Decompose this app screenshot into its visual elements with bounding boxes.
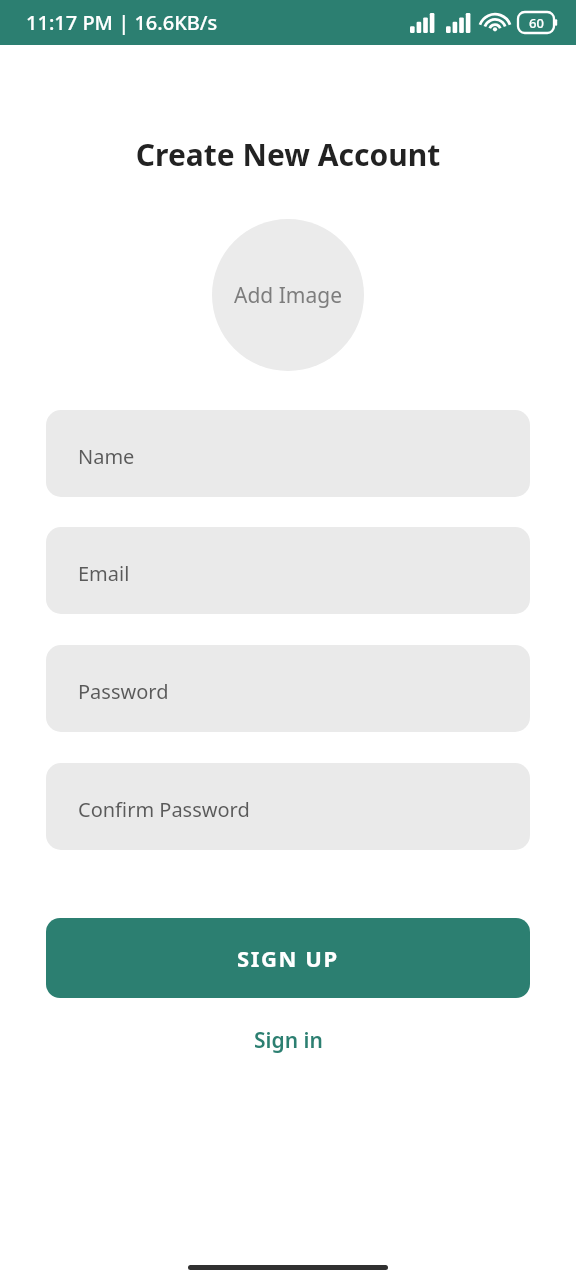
staticText: Email xyxy=(78,560,130,587)
staticText: Add Image xyxy=(234,281,343,310)
button[interactable]: Name xyxy=(46,410,530,497)
button[interactable]: Add Image xyxy=(212,219,364,371)
button[interactable]: SIGN UP xyxy=(46,918,530,998)
staticText: Sign in xyxy=(254,1026,323,1055)
button[interactable]: Email xyxy=(46,527,530,614)
button[interactable]: Sign in xyxy=(242,1020,335,1061)
button[interactable]: Confirm Password xyxy=(46,763,530,850)
staticText: SIGN UP xyxy=(237,943,339,973)
staticText: 60 xyxy=(529,14,544,32)
button[interactable]: Password xyxy=(46,645,530,732)
staticText: Password xyxy=(78,678,169,705)
staticText: Create New Account xyxy=(0,134,576,175)
staticText: Confirm Password xyxy=(78,796,250,823)
staticText: Name xyxy=(78,443,135,470)
staticText: 11:17 PM | 16.6KB/s xyxy=(26,9,218,36)
